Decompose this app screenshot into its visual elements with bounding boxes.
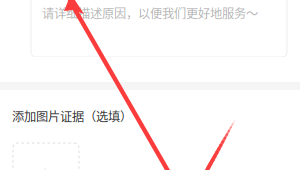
button[interactable]: 添加图片 — [0, 143, 79, 170]
staticText: 请详细描述原因，以便我们更好地服务～ — [42, 4, 258, 22]
staticText: 添加图片证据（选填） — [12, 107, 132, 125]
